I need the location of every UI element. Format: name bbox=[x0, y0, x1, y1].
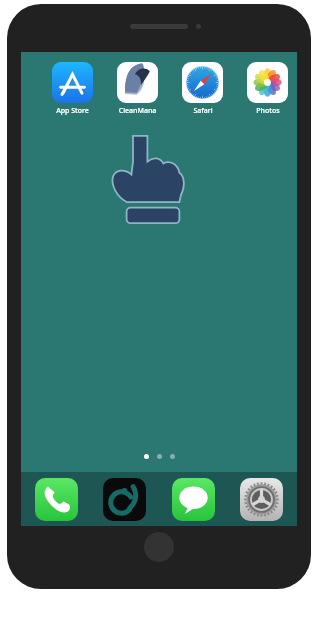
button[interactable]: Safari bbox=[182, 62, 223, 116]
button[interactable]: Photos bbox=[247, 62, 288, 116]
button[interactable]: CleanManager bbox=[117, 62, 158, 116]
button[interactable]: Phone bbox=[35, 478, 78, 521]
staticText: Safari bbox=[193, 106, 213, 116]
button[interactable]: Messages bbox=[172, 478, 215, 521]
button[interactable]: App Store bbox=[52, 62, 93, 116]
button[interactable]: Settings bbox=[240, 478, 283, 521]
button[interactable]: Home bbox=[144, 532, 174, 562]
staticText: App Store bbox=[56, 106, 89, 116]
button[interactable]: Clean Manager bbox=[103, 478, 146, 521]
staticText: Photos bbox=[256, 106, 280, 116]
staticText: CleanManager bbox=[117, 106, 158, 116]
